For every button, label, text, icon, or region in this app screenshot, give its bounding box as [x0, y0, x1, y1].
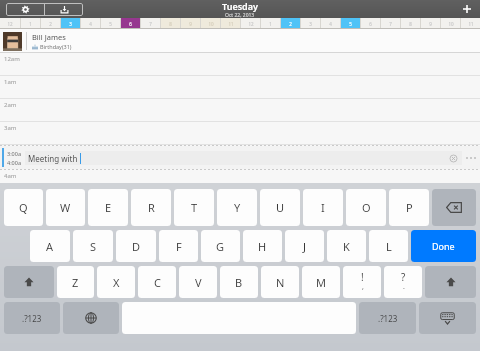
button[interactable]: 10: [201, 18, 220, 29]
staticText: 12am: [4, 55, 20, 63]
button[interactable]: F: [159, 230, 198, 262]
button[interactable]: I: [303, 189, 343, 226]
button[interactable]: 2: [41, 18, 60, 29]
button[interactable]: 5am: [0, 193, 480, 216]
staticText: .?123: [22, 313, 42, 324]
button[interactable]: 7: [381, 18, 400, 29]
button[interactable]: 2am: [0, 99, 480, 122]
staticText: K: [343, 239, 350, 254]
staticText: .?123: [378, 313, 398, 324]
button[interactable]: T: [174, 189, 214, 226]
staticText: 3:00a: [7, 150, 21, 157]
staticText: X: [113, 275, 120, 290]
button[interactable]: 6: [121, 18, 140, 29]
button[interactable]: 1: [21, 18, 40, 29]
staticText: Birthday(31): [40, 43, 72, 50]
button[interactable]: Shift: [4, 266, 54, 298]
button[interactable]: Q: [4, 189, 43, 226]
button[interactable]: 12: [241, 18, 260, 29]
button[interactable]: M: [302, 266, 340, 298]
button[interactable]: 12: [0, 18, 20, 29]
button[interactable]: O: [346, 189, 386, 226]
button[interactable]: 8: [161, 18, 180, 29]
button[interactable]: 6am: [0, 216, 480, 239]
button[interactable]: 9: [421, 18, 440, 29]
staticText: .: [403, 282, 405, 292]
button[interactable]: 8: [401, 18, 420, 29]
button[interactable]: X: [97, 266, 135, 298]
button[interactable]: 9: [181, 18, 200, 29]
button[interactable]: 1am: [0, 76, 480, 99]
button[interactable]: 12am: [0, 53, 480, 76]
button[interactable]: 3: [61, 18, 80, 29]
button[interactable]: Shift: [425, 266, 476, 298]
button[interactable]: Backspace: [432, 189, 476, 226]
staticText: 1: [29, 21, 32, 27]
button[interactable]: ?: [384, 266, 422, 298]
staticText: 4: [329, 21, 332, 27]
staticText: G: [216, 239, 225, 254]
button[interactable]: J: [285, 230, 324, 262]
button[interactable]: 7: [141, 18, 160, 29]
staticText: Y: [234, 200, 241, 215]
button[interactable]: C: [138, 266, 176, 298]
button[interactable]: 4am: [0, 170, 480, 193]
other: Contact photo: [3, 32, 22, 51]
staticText: D: [132, 239, 141, 254]
staticText: 11: [228, 21, 234, 27]
staticText: 4:00a: [7, 159, 21, 166]
button[interactable]: R: [131, 189, 171, 226]
button[interactable]: Meeting with: [25, 151, 462, 165]
button[interactable]: .?123: [4, 302, 60, 334]
staticText: 3am: [4, 124, 17, 132]
staticText: N: [276, 275, 285, 290]
staticText: Tuesday: [222, 0, 258, 12]
button[interactable]: 3: [301, 18, 320, 29]
staticText: 6: [129, 21, 132, 27]
button[interactable]: 3am: [0, 122, 480, 145]
button[interactable]: 6: [361, 18, 380, 29]
button[interactable]: Z: [57, 266, 94, 298]
button[interactable]: Change keyboard: [63, 302, 119, 334]
button[interactable]: 10: [441, 18, 460, 29]
staticText: 3: [309, 21, 312, 27]
button[interactable]: W: [46, 189, 85, 226]
staticText: R: [148, 200, 155, 215]
button[interactable]: 1: [261, 18, 280, 29]
button[interactable]: E: [88, 189, 128, 226]
button[interactable]: .?123: [359, 302, 416, 334]
button[interactable]: P: [389, 189, 429, 226]
button[interactable]: 4: [81, 18, 100, 29]
button[interactable]: 5: [101, 18, 120, 29]
button[interactable]: D: [116, 230, 156, 262]
button[interactable]: H: [243, 230, 282, 262]
button[interactable]: 11: [461, 18, 480, 29]
staticText: Done: [432, 240, 455, 252]
button[interactable]: A: [30, 230, 70, 262]
button[interactable]: Add event: [454, 0, 480, 18]
button[interactable]: 4: [321, 18, 340, 29]
button[interactable]: Contact photo: [0, 29, 480, 53]
button[interactable]: U: [260, 189, 300, 226]
button[interactable]: Y: [217, 189, 257, 226]
button[interactable]: Done: [411, 230, 476, 262]
button[interactable]: Clear text: [450, 155, 457, 162]
button[interactable]: S: [73, 230, 113, 262]
button[interactable]: L: [369, 230, 408, 262]
button[interactable]: K: [327, 230, 366, 262]
button[interactable]: !: [343, 266, 381, 298]
button[interactable]: 11: [221, 18, 240, 29]
button[interactable]: 2: [281, 18, 300, 29]
button[interactable]: 5: [341, 18, 360, 29]
button[interactable]: V: [179, 266, 217, 298]
staticText: 10: [208, 21, 214, 27]
button[interactable]: Settings: [6, 3, 44, 16]
button[interactable]: B: [220, 266, 258, 298]
staticText: O: [362, 200, 371, 215]
button[interactable]: Download: [45, 3, 83, 16]
button[interactable]: N: [261, 266, 299, 298]
staticText: C: [154, 275, 161, 290]
button[interactable]: Hide keyboard: [419, 302, 476, 334]
button[interactable]: G: [201, 230, 240, 262]
